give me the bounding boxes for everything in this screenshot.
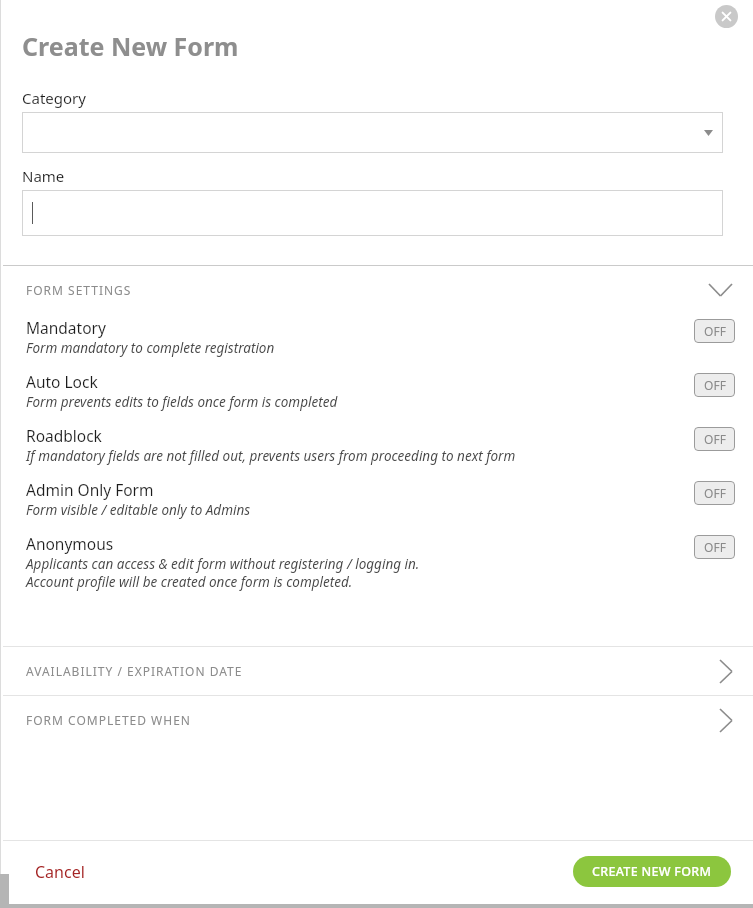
staticText: Auto Lock bbox=[26, 371, 98, 392]
staticText: CREATE NEW FORM bbox=[592, 863, 712, 880]
staticText: Cancel bbox=[35, 861, 85, 883]
staticText: Applicants can access & edit form withou… bbox=[26, 555, 420, 573]
staticText: Roadblock bbox=[26, 425, 102, 446]
staticText: OFF bbox=[704, 377, 726, 393]
staticText: AVAILABILITY / EXPIRATION DATE bbox=[26, 663, 243, 679]
staticText: FORM COMPLETED WHEN bbox=[26, 712, 191, 728]
button[interactable]: FORM COMPLETED WHEN bbox=[3, 696, 753, 744]
staticText: Category bbox=[22, 88, 86, 108]
button[interactable]: Cancel bbox=[32, 855, 88, 889]
button[interactable]: Anonymous toggle, off bbox=[694, 535, 735, 559]
button[interactable]: Admin Only Form toggle, off bbox=[694, 481, 735, 505]
button[interactable]: Auto Lock toggle, off bbox=[694, 373, 735, 397]
button[interactable]: Mandatory toggle, off bbox=[694, 319, 735, 343]
staticText: FORM SETTINGS bbox=[26, 282, 132, 298]
button[interactable]: Name input bbox=[22, 190, 723, 236]
staticText: OFF bbox=[704, 323, 726, 339]
staticText: OFF bbox=[704, 431, 726, 447]
staticText: Form prevents edits to fields once form … bbox=[26, 393, 338, 411]
staticText: OFF bbox=[704, 485, 726, 501]
staticText: OFF bbox=[704, 539, 726, 555]
button[interactable]: Category dropdown bbox=[22, 112, 723, 153]
button[interactable]: Roadblock bbox=[3, 422, 753, 476]
button[interactable]: Roadblock toggle, off bbox=[694, 427, 735, 451]
button[interactable]: FORM SETTINGS bbox=[3, 266, 753, 314]
staticText: Create New Form bbox=[22, 29, 239, 63]
staticText: If mandatory fields are not filled out, … bbox=[26, 447, 516, 465]
staticText: Form mandatory to complete registration bbox=[26, 339, 275, 357]
button[interactable]: CREATE NEW FORM bbox=[573, 856, 731, 887]
staticText: Admin Only Form bbox=[26, 479, 154, 500]
staticText: Account profile will be created once for… bbox=[26, 573, 353, 591]
button[interactable]: AVAILABILITY / EXPIRATION DATE bbox=[3, 647, 753, 695]
staticText: Mandatory bbox=[26, 317, 106, 338]
staticText: Form visible / editable only to Admins bbox=[26, 501, 251, 519]
button[interactable]: Close bbox=[715, 5, 738, 28]
button[interactable]: Auto Lock bbox=[3, 368, 753, 422]
button[interactable]: Admin Only Form bbox=[3, 476, 753, 530]
staticText: Name bbox=[22, 166, 65, 186]
button[interactable]: Anonymous bbox=[3, 530, 753, 602]
button[interactable]: Mandatory bbox=[3, 314, 753, 368]
staticText: Anonymous bbox=[26, 533, 114, 554]
